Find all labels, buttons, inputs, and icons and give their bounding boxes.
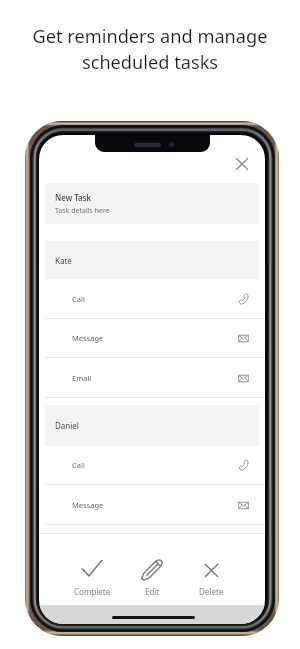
button[interactable]: Call (39, 279, 265, 319)
staticText: Daniel (55, 420, 79, 431)
button[interactable]: Kate (45, 241, 259, 279)
button[interactable]: Call (39, 445, 265, 485)
staticText: Delete (199, 586, 224, 597)
staticText: Email (72, 373, 92, 383)
staticText: New Task (55, 192, 91, 203)
button[interactable]: Email (39, 358, 265, 398)
staticText: Get reminders and manage scheduled tasks (0, 24, 300, 74)
button[interactable]: Daniel (45, 405, 259, 446)
staticText: Complete (74, 586, 111, 597)
staticText: Call (72, 460, 85, 470)
staticText: Edit (145, 586, 160, 597)
button[interactable]: Complete (61, 534, 123, 605)
button[interactable]: Close (230, 152, 254, 176)
staticText: Kate (55, 255, 72, 266)
staticText: Message (72, 333, 104, 343)
staticText: Task details here (55, 206, 110, 216)
button[interactable]: Message (39, 485, 265, 525)
button[interactable]: Edit (121, 534, 183, 605)
button[interactable]: New Task (45, 183, 259, 224)
staticText: Call (72, 294, 85, 304)
staticText: Message (72, 500, 104, 510)
button[interactable]: Message (39, 318, 265, 358)
button[interactable]: Delete (180, 534, 242, 605)
